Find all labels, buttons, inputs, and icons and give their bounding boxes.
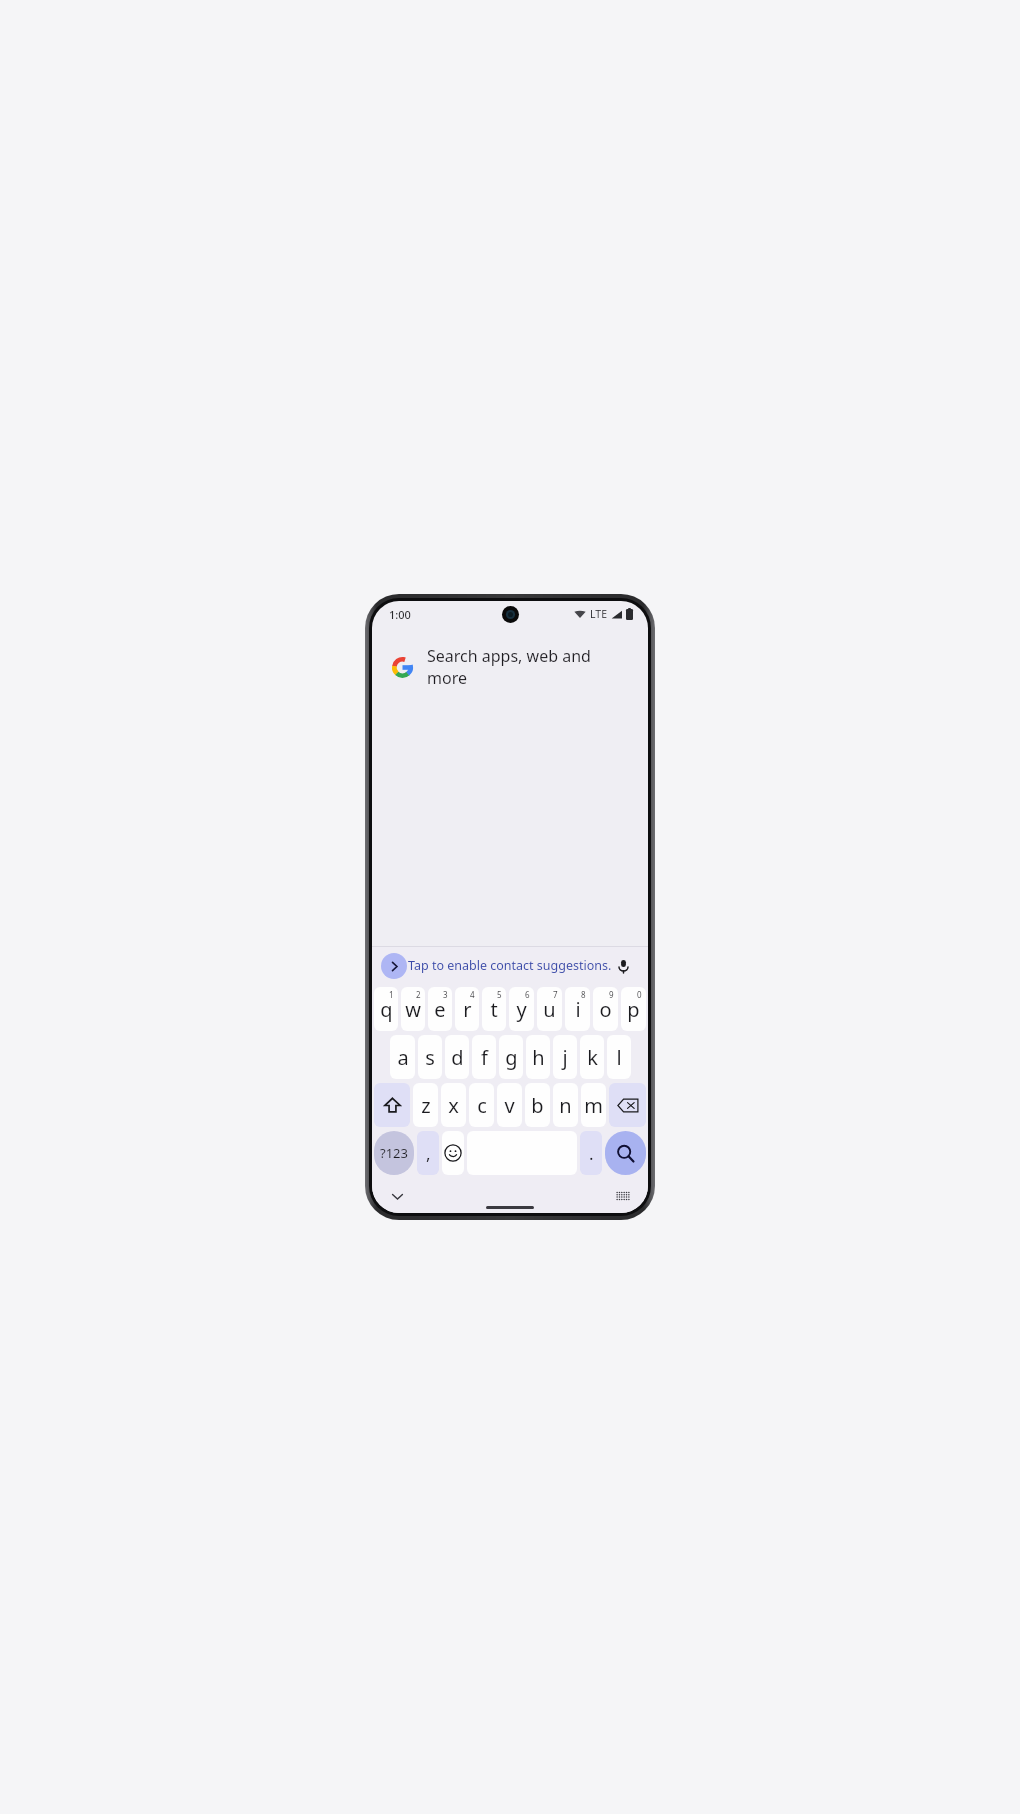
staticText: p [627,996,640,1023]
button[interactable]: r [455,987,479,1031]
button[interactable]: . [580,1131,602,1175]
button[interactable]: Search [605,1131,646,1175]
staticText: e [434,996,446,1023]
staticText: m [584,1092,603,1119]
button[interactable]: l [607,1035,631,1079]
button[interactable]: Tap to enable contact suggestions. [408,957,612,974]
button[interactable]: s [418,1035,442,1079]
staticText: h [532,1044,545,1071]
button[interactable]: k [580,1035,604,1079]
button[interactable]: g [499,1035,523,1079]
staticText: w [405,996,421,1023]
staticText: 0 [637,989,642,1000]
button[interactable]: w [401,987,425,1031]
button[interactable]: a [390,1035,415,1079]
button[interactable]: n [553,1083,578,1127]
button[interactable]: f [472,1035,496,1079]
staticText: x [448,1092,459,1119]
staticText: q [380,996,393,1023]
staticText: 1:00 [389,607,411,622]
button[interactable]: d [445,1035,469,1079]
button[interactable]: t [482,987,506,1031]
staticText: . [589,1142,594,1165]
button[interactable]: m [581,1083,606,1127]
staticText: d [451,1044,464,1071]
staticText: j [562,1044,568,1071]
button[interactable]: i [565,987,590,1031]
staticText: a [397,1044,409,1071]
staticText: k [587,1044,598,1071]
button[interactable]: Voice input [610,953,636,979]
button[interactable]: e [428,987,452,1031]
staticText: 7 [553,989,558,1000]
staticText: l [616,1044,622,1071]
button[interactable]: u [537,987,562,1031]
button[interactable]: Backspace [609,1083,646,1127]
button[interactable]: q [374,987,398,1031]
staticText: 6 [525,989,530,1000]
staticText: o [599,996,612,1023]
staticText: 5 [497,989,502,1000]
staticText: Search apps, web and more [427,645,632,689]
staticText: v [504,1092,515,1119]
button[interactable]: Emoji [442,1131,464,1175]
button[interactable]: h [526,1035,550,1079]
staticText: y [516,996,527,1023]
staticText: 8 [581,989,586,1000]
staticText: z [421,1092,431,1119]
button[interactable]: c [469,1083,494,1127]
button[interactable]: Search apps, web and more [372,641,648,693]
button[interactable]: o [593,987,618,1031]
button[interactable]: p [621,987,646,1031]
button[interactable]: y [509,987,534,1031]
staticText: 3 [443,989,448,1000]
staticText: r [463,996,472,1023]
button[interactable]: b [525,1083,550,1127]
button[interactable]: Expand suggestions [381,953,407,979]
button[interactable]: Switch keyboard [610,1183,636,1209]
staticText: u [543,996,556,1023]
button[interactable]: Shift [374,1083,410,1127]
staticText: 1 [389,989,394,1000]
staticText: s [425,1044,435,1071]
staticText: LTE [590,607,607,621]
staticText: , [426,1142,431,1165]
staticText: 9 [609,989,614,1000]
staticText: i [575,996,581,1023]
button[interactable]: x [441,1083,466,1127]
button[interactable]: ?123 [374,1131,414,1175]
staticText: g [505,1044,518,1071]
button[interactable]: , [417,1131,439,1175]
staticText: 4 [470,989,475,1000]
staticText: t [490,996,498,1023]
staticText: c [477,1092,487,1119]
button[interactable]: v [497,1083,522,1127]
staticText: f [481,1044,488,1071]
staticText: b [531,1092,544,1119]
button[interactable]: Hide keyboard [384,1183,410,1209]
button[interactable]: j [553,1035,577,1079]
button[interactable]: z [413,1083,438,1127]
staticText: 2 [416,989,421,1000]
staticText: ?123 [380,1144,408,1162]
staticText: n [559,1092,572,1119]
